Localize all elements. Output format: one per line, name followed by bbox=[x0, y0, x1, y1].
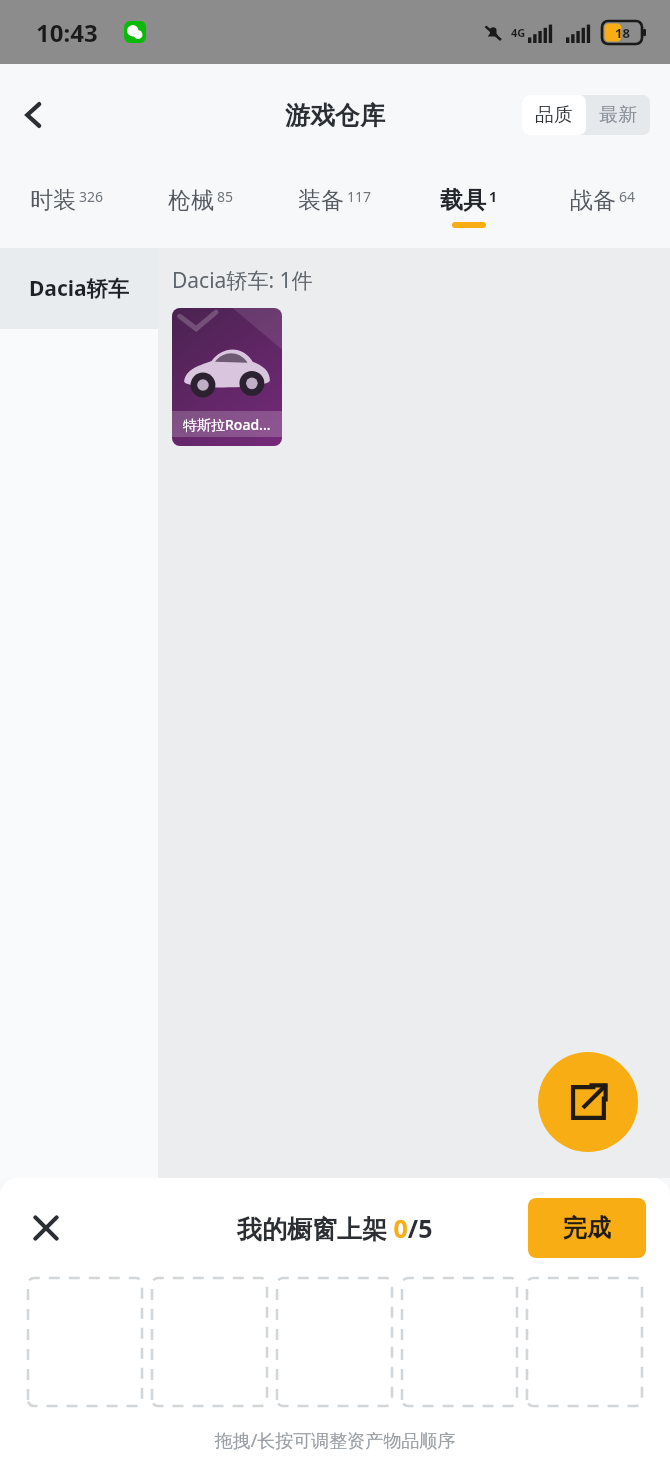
staticText: 64 bbox=[619, 187, 636, 206]
button[interactable]: Share to showcase bbox=[538, 1052, 638, 1152]
staticText: 我的橱窗上架 0/5 bbox=[237, 1211, 433, 1245]
staticText: Dacia轿车 bbox=[29, 274, 129, 303]
button[interactable]: 枪械 bbox=[134, 166, 268, 248]
staticText: 最新 bbox=[599, 103, 637, 127]
staticText: 战备 bbox=[570, 186, 616, 215]
staticText: 特斯拉Road... bbox=[183, 415, 271, 434]
button[interactable]: 战备 bbox=[536, 166, 670, 248]
button[interactable] bbox=[28, 1278, 142, 1406]
button[interactable]: 最新 bbox=[599, 103, 637, 127]
staticText: 枪械 bbox=[168, 186, 214, 215]
button[interactable]: 完成 bbox=[528, 1198, 646, 1258]
button[interactable]: 载具 bbox=[402, 166, 536, 248]
staticText: 85 bbox=[217, 187, 234, 206]
staticText: 拖拽/长按可调整资产物品顺序 bbox=[0, 1428, 670, 1453]
staticText: 时装 bbox=[30, 186, 76, 215]
staticText: 品质 bbox=[535, 103, 573, 127]
button[interactable]: 装备 bbox=[268, 166, 402, 248]
staticText: 载具 bbox=[440, 186, 486, 215]
staticText: Dacia轿车: 1件 bbox=[172, 266, 313, 295]
button[interactable] bbox=[402, 1278, 517, 1406]
staticText: 完成 bbox=[563, 1213, 611, 1243]
button[interactable]: 特斯拉Road... bbox=[172, 308, 282, 446]
staticText: 装备 bbox=[298, 186, 344, 215]
button[interactable]: Dacia轿车 bbox=[0, 248, 158, 329]
staticText: 18 bbox=[615, 24, 630, 42]
button[interactable] bbox=[277, 1278, 392, 1406]
staticText: 117 bbox=[347, 187, 372, 206]
button[interactable]: Close bbox=[18, 1200, 74, 1256]
button[interactable] bbox=[152, 1278, 267, 1406]
staticText: 326 bbox=[79, 187, 104, 206]
button[interactable]: Back bbox=[8, 89, 60, 141]
staticText: 10:43 bbox=[36, 16, 98, 49]
button[interactable]: 品质 bbox=[535, 103, 573, 127]
staticText: 1 bbox=[489, 187, 498, 206]
staticText: 4G bbox=[511, 25, 526, 40]
button[interactable]: 时装 bbox=[0, 166, 134, 248]
button[interactable] bbox=[527, 1278, 642, 1406]
staticText: 游戏仓库 bbox=[285, 100, 385, 131]
